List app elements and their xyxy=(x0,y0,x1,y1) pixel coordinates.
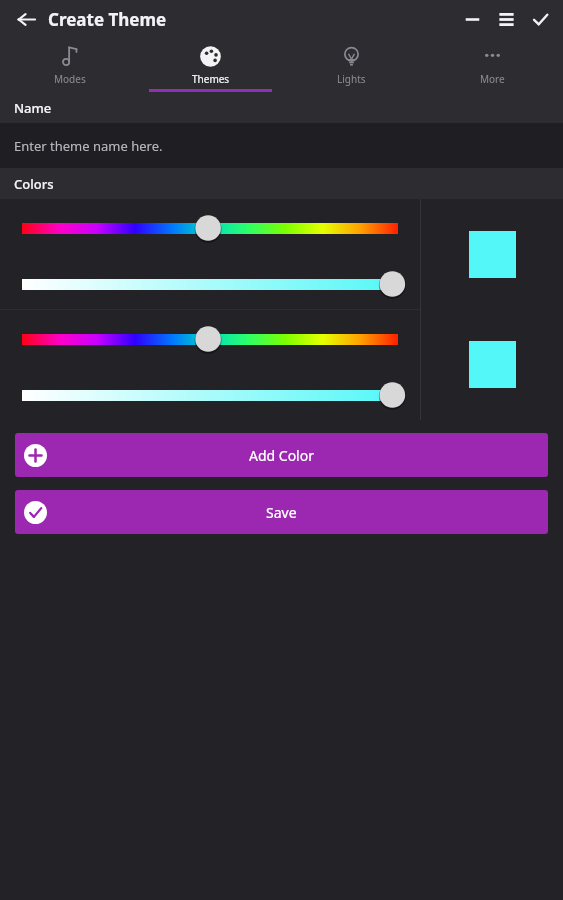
button[interactable]: Save xyxy=(15,490,548,534)
staticText: Add Color xyxy=(249,446,314,465)
staticText: Modes xyxy=(54,72,86,86)
button[interactable]: Back xyxy=(11,4,41,34)
button[interactable]: Brightness slider xyxy=(0,382,420,408)
staticText: Colors xyxy=(14,175,54,193)
staticText: More xyxy=(480,72,505,86)
staticText: Lights xyxy=(337,72,366,86)
staticText: Themes xyxy=(192,72,230,86)
button[interactable]: Hue slider xyxy=(0,215,420,241)
button[interactable]: Brightness slider xyxy=(0,271,420,297)
button[interactable]: Themes xyxy=(140,38,281,92)
button[interactable]: Hue slider xyxy=(0,326,420,352)
staticText: Name xyxy=(14,99,52,117)
button[interactable]: Menu xyxy=(492,5,520,33)
staticText: Create Theme xyxy=(48,8,167,31)
button[interactable]: Lights xyxy=(281,38,422,92)
button[interactable]: More xyxy=(422,38,563,92)
button[interactable]: Enter theme name here. xyxy=(0,123,563,168)
button[interactable]: Modes xyxy=(0,38,140,92)
staticText: Save xyxy=(266,503,297,522)
staticText: Enter theme name here. xyxy=(14,137,163,155)
button[interactable]: Confirm xyxy=(526,5,554,33)
button[interactable]: Minimize xyxy=(458,5,486,33)
button[interactable]: Add Color xyxy=(15,433,548,477)
